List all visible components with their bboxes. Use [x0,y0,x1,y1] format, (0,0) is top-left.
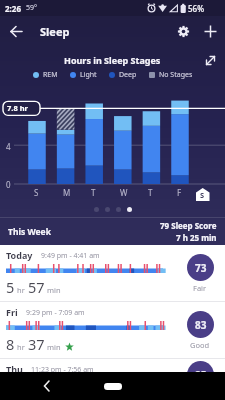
button[interactable]: Thu [0,359,225,372]
staticText: 0 [6,179,11,190]
staticText: 9:29 pm - 7:09 am [26,308,85,318]
button[interactable] [42,381,52,391]
staticText: min [47,285,61,295]
staticText: 11:23 pm - 7:56 am [31,365,94,372]
staticText: 73 [195,261,207,275]
staticText: 7 h 25 min [176,232,217,243]
button[interactable]: Today [0,245,225,301]
staticText: M [63,187,71,198]
button[interactable] [204,54,217,67]
staticText: S [34,187,39,198]
staticText: Thu [6,363,23,372]
button[interactable]: Fri [0,302,225,358]
staticText: 59° [26,3,38,13]
staticText: REM [43,70,58,80]
staticText: 7.8 hr [7,103,28,113]
staticText: min [47,342,61,352]
button[interactable]: This Week [8,218,217,245]
button[interactable] [177,25,190,38]
staticText: 9:49 pm - 4:41 am [41,251,100,261]
staticText: 83 [195,318,207,332]
staticText: Today [6,249,33,261]
staticText: Sleep [40,24,70,39]
staticText: T [91,187,96,198]
staticText: 79 Sleep Score [160,220,217,231]
staticText: This Week [8,226,51,238]
staticText: W [120,187,128,198]
staticText: Light [80,70,97,80]
button[interactable] [204,25,217,38]
button[interactable] [10,25,23,38]
staticText: hr [17,285,25,295]
staticText: F [177,187,182,198]
staticText: 56% [188,3,204,14]
staticText: 8 [6,334,15,354]
staticText: 85 [195,368,207,372]
staticText: Fair [193,283,207,293]
staticText: 37 [28,334,45,354]
staticText: Good [190,340,210,350]
staticText: 5 [6,277,15,297]
staticText: hr [17,342,25,352]
staticText: Deep [119,70,137,80]
staticText: 4 [6,141,11,152]
staticText: Fri [6,306,18,318]
staticText: T [148,187,153,198]
button[interactable] [104,383,122,390]
staticText: Hours in Sleep Stages [64,54,161,66]
staticText: 57 [28,277,45,297]
staticText: S [200,190,205,200]
staticText: 2:26 [5,3,21,14]
staticText: No Stages [159,70,193,80]
